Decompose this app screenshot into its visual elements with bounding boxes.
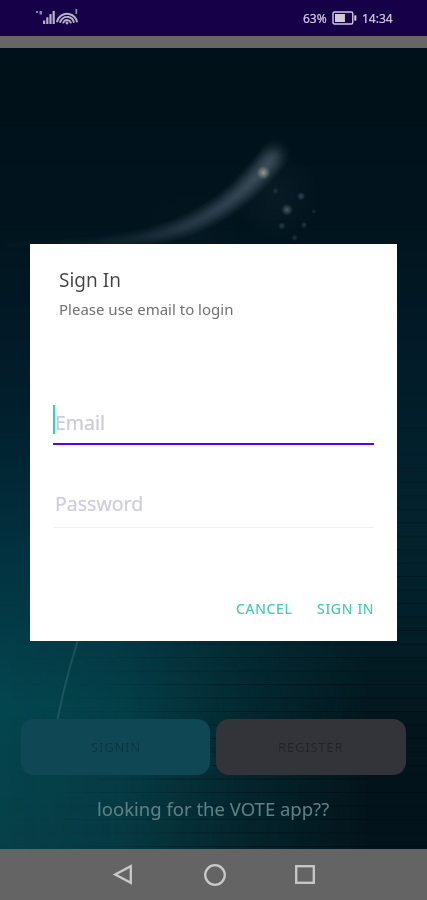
staticText: Email: [55, 409, 106, 436]
staticText: Please use email to login: [59, 299, 234, 319]
button[interactable]: Recent apps: [276, 849, 333, 900]
staticText: CANCEL: [236, 599, 293, 618]
staticText: REGISTER: [278, 738, 344, 756]
button[interactable]: CANCEL: [224, 590, 305, 627]
staticText: looking for the VOTE app??: [97, 796, 330, 821]
staticText: Password: [55, 490, 144, 517]
button[interactable]: REGISTER: [216, 719, 406, 775]
staticText: Sign In: [59, 267, 121, 293]
staticText: 63%: [303, 10, 327, 26]
staticText: SIGNIN: [91, 738, 141, 756]
button[interactable]: SIGN IN: [305, 590, 387, 627]
button[interactable]: looking for the VOTE app??: [0, 796, 427, 821]
staticText: SIGN IN: [317, 599, 375, 618]
button[interactable]: SIGNIN: [21, 719, 210, 775]
staticText: 14:34: [362, 10, 393, 26]
button[interactable]: Back: [94, 849, 151, 900]
button[interactable]: Home: [186, 849, 243, 900]
